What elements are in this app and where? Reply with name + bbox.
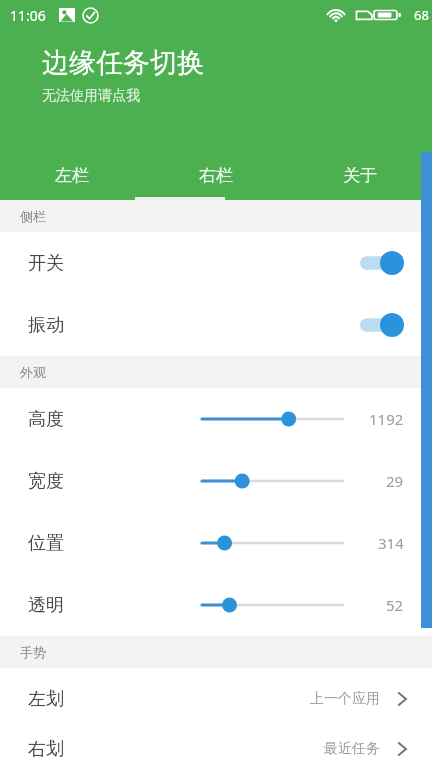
staticText: 右栏 (199, 165, 233, 186)
staticText: 边缘任务切换 (42, 46, 204, 80)
staticText: 外观 (20, 364, 46, 380)
button[interactable]: 左栏 (0, 150, 144, 200)
button[interactable]: 关于 (288, 150, 432, 200)
button[interactable]: 位置 (0, 512, 432, 574)
staticText: 上一个应用 (310, 690, 380, 708)
button[interactable]: 右划 (0, 730, 432, 768)
other: 开关 toggle (358, 251, 404, 275)
staticText: 314 (378, 533, 404, 553)
staticText: 侧栏 (20, 208, 46, 224)
staticText: 左栏 (55, 165, 89, 186)
staticText: 手势 (20, 644, 46, 660)
staticText: 开关 (28, 252, 64, 275)
staticText: 关于 (343, 165, 377, 186)
staticText: 11:06 (10, 6, 46, 25)
staticText: 左划 (28, 688, 64, 711)
staticText: 1192 (369, 409, 404, 429)
button[interactable]: 开关 (0, 232, 432, 294)
staticText: 无法使用请点我 (42, 87, 140, 105)
other: 振动 toggle (358, 313, 404, 337)
button[interactable]: 左划 (0, 668, 432, 730)
staticText: 29 (386, 471, 404, 491)
button[interactable]: 高度 (0, 388, 432, 450)
staticText: 振动 (28, 314, 64, 337)
staticText: 高度 (28, 408, 64, 431)
staticText: 透明 (28, 594, 64, 617)
staticText: 最近任务 (324, 740, 380, 758)
staticText: 52 (386, 595, 404, 615)
button[interactable]: 右栏 (144, 150, 288, 200)
button[interactable]: 宽度 (0, 450, 432, 512)
button[interactable]: 振动 (0, 294, 432, 356)
staticText: 68 (414, 6, 429, 24)
staticText: 位置 (28, 532, 64, 555)
button[interactable]: 透明 (0, 574, 432, 636)
staticText: 右划 (28, 738, 64, 761)
staticText: 宽度 (28, 470, 64, 493)
